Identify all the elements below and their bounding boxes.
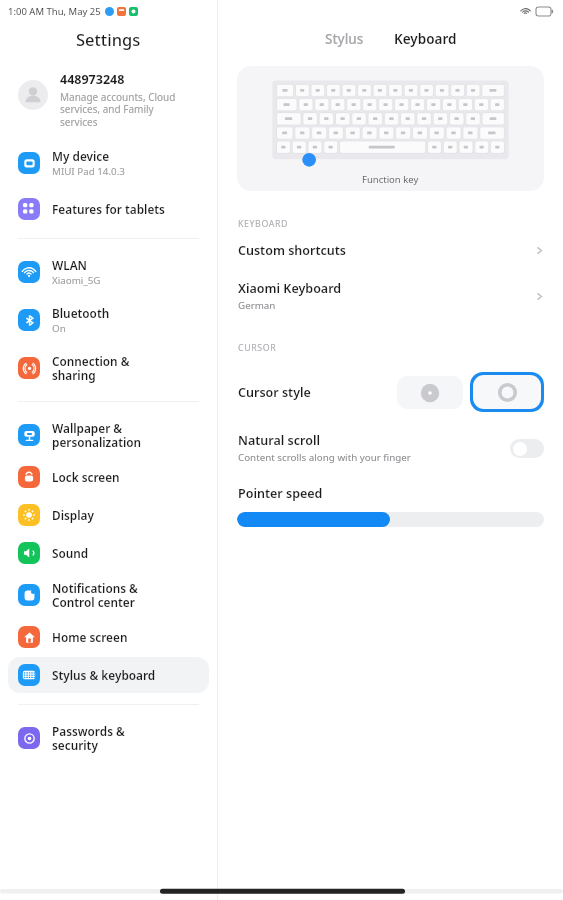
staticText: Custom shortcuts [238, 242, 346, 259]
staticText: Xiaomi Keyboard [238, 280, 342, 297]
button[interactable]: 448973248 [0, 67, 217, 133]
button[interactable]: Stylus [315, 26, 374, 52]
staticText: Manage accounts, Cloud services, and Fam… [60, 90, 176, 129]
staticText: Display [52, 507, 94, 523]
button[interactable]: Ring cursor style, selected [473, 375, 541, 409]
staticText: Wallpaper & personalization [52, 420, 142, 450]
staticText: KEYBOARD [238, 218, 289, 230]
staticText: 1:00 AM Thu, May 25 [8, 5, 101, 18]
staticText: MIUI Pad 14.0.3 [52, 165, 125, 178]
button[interactable]: Keyboard [384, 26, 467, 52]
staticText: Stylus [325, 30, 364, 48]
button[interactable]: Pointer speed slider [237, 512, 544, 527]
staticText: Cursor style [238, 384, 311, 401]
staticText: On [52, 322, 66, 335]
button[interactable]: Features for tablets [8, 191, 209, 227]
staticText: Settings [76, 28, 141, 50]
button[interactable]: Custom shortcuts [218, 242, 563, 259]
staticText: Xiaomi_5G [52, 274, 101, 287]
staticText: CURSOR [238, 342, 277, 354]
staticText: Stylus & keyboard [52, 667, 156, 683]
button[interactable]: Filled cursor style [397, 376, 463, 409]
staticText: German [238, 299, 276, 312]
staticText: Features for tablets [52, 201, 165, 217]
button[interactable]: Home screen [8, 619, 209, 655]
button[interactable]: WLAN [8, 250, 209, 294]
button[interactable]: Lock screen [8, 459, 209, 495]
button[interactable]: Passwords & security [8, 716, 209, 760]
button[interactable]: Xiaomi Keyboard [218, 280, 563, 312]
staticText: Function key [362, 173, 419, 186]
staticText: Lock screen [52, 469, 120, 485]
staticText: Notifications & Control center [52, 580, 138, 610]
staticText: WLAN [52, 257, 87, 273]
staticText: Content scrolls along with your finger [238, 451, 411, 464]
staticText: Connection & sharing [52, 353, 130, 383]
staticText: Home screen [52, 629, 128, 645]
staticText: My device [52, 148, 110, 164]
staticText: 448973248 [60, 71, 125, 88]
button[interactable]: Stylus & keyboard [8, 657, 209, 693]
staticText: Bluetooth [52, 305, 110, 321]
button[interactable]: Display [8, 497, 209, 533]
button[interactable]: Wallpaper & personalization [8, 413, 209, 457]
button[interactable]: Notifications & Control center [8, 573, 209, 617]
staticText: Sound [52, 545, 89, 561]
button[interactable]: Connection & sharing [8, 346, 209, 390]
staticText: Natural scroll [238, 432, 320, 449]
button[interactable]: Bluetooth [8, 298, 209, 342]
button[interactable]: My device [8, 141, 209, 185]
button[interactable]: Natural scroll [218, 432, 563, 464]
staticText: Keyboard [394, 30, 457, 48]
button[interactable]: Sound [8, 535, 209, 571]
staticText: Passwords & security [52, 723, 125, 753]
staticText: Pointer speed [238, 485, 323, 502]
button[interactable]: Keyboard layout diagram [237, 66, 544, 191]
